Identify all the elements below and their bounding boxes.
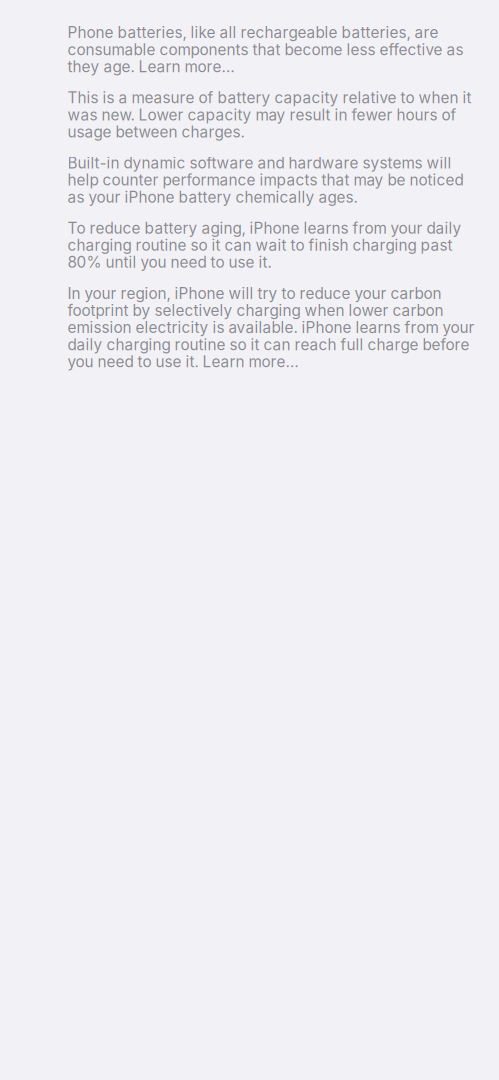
staticText: This is a measure of battery capacity re…: [67, 89, 471, 140]
staticText: Built-in dynamic software and hardware s…: [67, 154, 463, 206]
staticText: In your region, iPhone will try to reduc…: [67, 285, 474, 370]
staticText: Phone batteries, like all rechargeable b…: [67, 24, 463, 75]
staticText: To reduce battery aging, iPhone learns f…: [67, 220, 461, 271]
